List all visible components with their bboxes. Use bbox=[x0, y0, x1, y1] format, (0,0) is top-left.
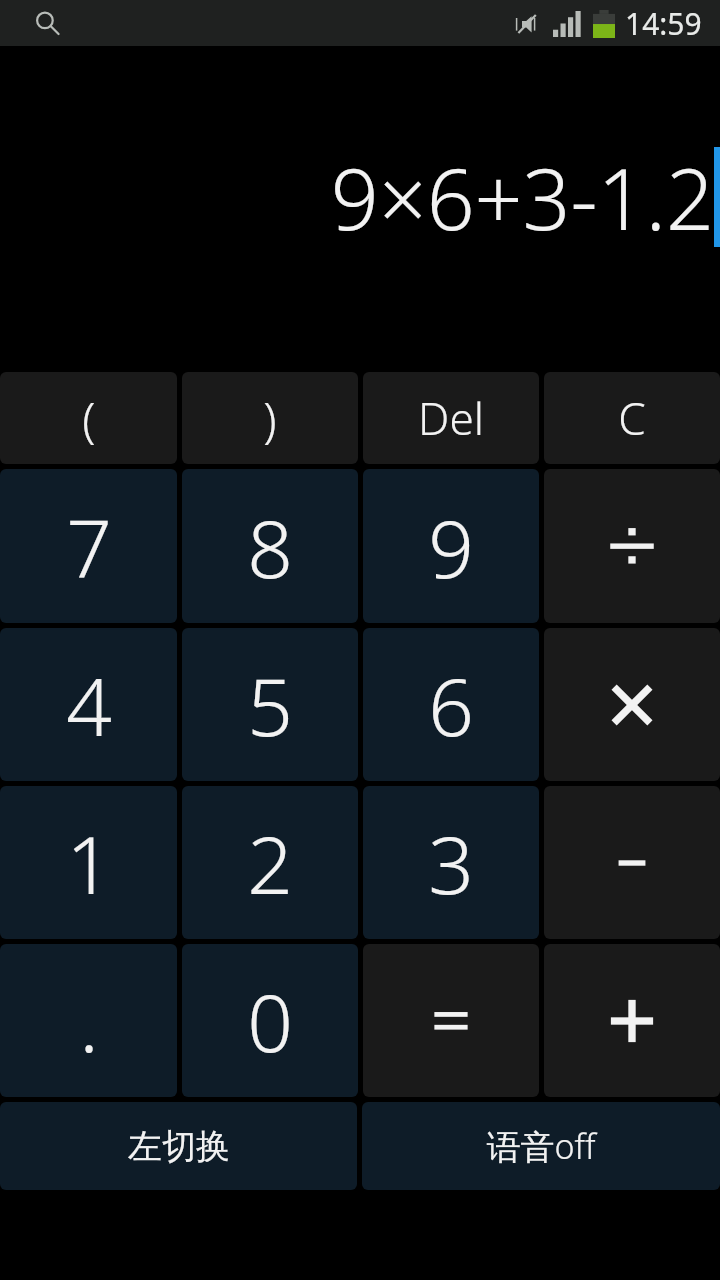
button[interactable]: . bbox=[0, 944, 177, 1097]
staticText: C bbox=[618, 388, 646, 448]
staticText: 5 bbox=[247, 650, 293, 759]
button[interactable]: C bbox=[544, 372, 720, 464]
staticText: 2 bbox=[247, 808, 293, 917]
button[interactable]: 6 bbox=[363, 628, 539, 781]
button[interactable]: 0 bbox=[182, 944, 358, 1097]
staticText: 语音off bbox=[486, 1123, 596, 1169]
staticText: 14:59 bbox=[625, 3, 702, 44]
button[interactable]: 2 bbox=[182, 786, 358, 939]
button[interactable]: Del bbox=[363, 372, 539, 464]
button[interactable]: Divide bbox=[544, 469, 720, 623]
staticText: ( bbox=[82, 386, 96, 451]
button[interactable]: 左切换 bbox=[0, 1102, 357, 1190]
staticText: 4 bbox=[66, 650, 112, 759]
staticText: 左切换 bbox=[128, 1125, 230, 1168]
button[interactable]: 9 bbox=[363, 469, 539, 623]
staticText: 8 bbox=[247, 492, 293, 601]
button[interactable]: ) bbox=[182, 372, 358, 464]
button[interactable]: Minus bbox=[544, 786, 720, 939]
button[interactable]: 1 bbox=[0, 786, 177, 939]
staticText: 9×6+3-1.2 bbox=[330, 140, 714, 254]
staticText: 9 bbox=[428, 492, 474, 601]
staticText: . bbox=[79, 966, 99, 1075]
staticText: 7 bbox=[66, 492, 112, 601]
button[interactable]: ( bbox=[0, 372, 177, 464]
button[interactable]: 4 bbox=[0, 628, 177, 781]
button[interactable]: 3 bbox=[363, 786, 539, 939]
staticText: 6 bbox=[428, 650, 474, 759]
button[interactable]: 5 bbox=[182, 628, 358, 781]
button[interactable]: Plus bbox=[544, 944, 720, 1097]
staticText: 0 bbox=[247, 966, 293, 1075]
staticText: 3 bbox=[428, 808, 474, 917]
button[interactable]: Equals bbox=[363, 944, 539, 1097]
button[interactable]: 7 bbox=[0, 469, 177, 623]
button[interactable]: 8 bbox=[182, 469, 358, 623]
staticText: ) bbox=[263, 386, 277, 451]
staticText: Del bbox=[418, 388, 484, 448]
button[interactable]: Multiply bbox=[544, 628, 720, 781]
staticText: 1 bbox=[66, 808, 112, 917]
button[interactable]: 语音off bbox=[362, 1102, 720, 1190]
